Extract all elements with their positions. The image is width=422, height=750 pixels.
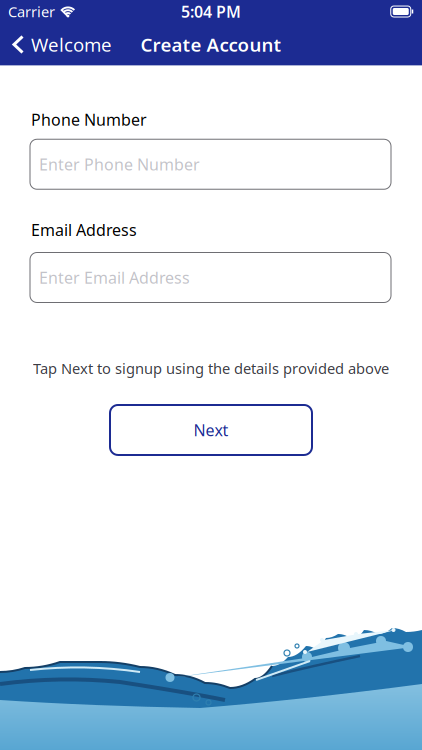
button[interactable]: Welcome xyxy=(0,32,112,57)
staticText: Enter Phone Number xyxy=(39,154,200,175)
staticText: Phone Number xyxy=(31,109,147,130)
staticText: Carrier xyxy=(8,2,55,21)
staticText: Create Account xyxy=(140,32,281,57)
staticText: Next xyxy=(193,419,228,440)
staticText: Email Address xyxy=(31,219,137,240)
button[interactable]: Next xyxy=(110,405,312,455)
button[interactable]: Enter Email Address xyxy=(30,252,391,302)
staticText: Tap Next to signup using the details pro… xyxy=(33,358,389,378)
staticText: 5:04 PM xyxy=(181,1,241,22)
staticText: Welcome xyxy=(31,32,112,57)
staticText: Enter Email Address xyxy=(39,267,190,288)
button[interactable]: Enter Phone Number xyxy=(30,139,391,189)
